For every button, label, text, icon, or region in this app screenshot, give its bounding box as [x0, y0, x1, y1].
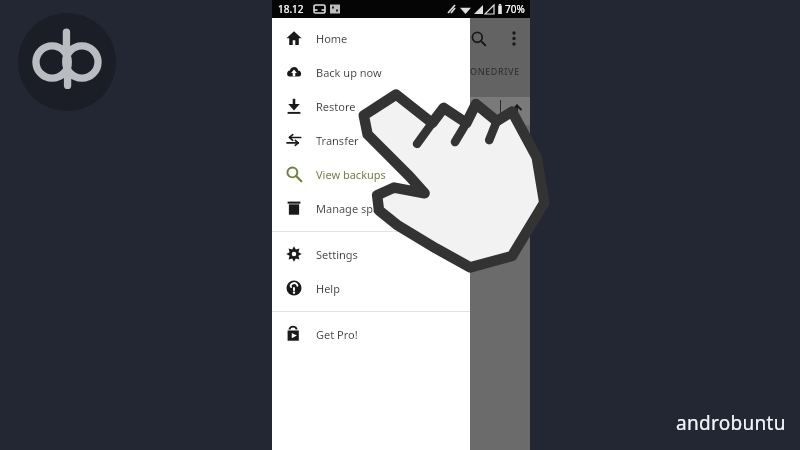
button[interactable]: Settings [272, 237, 470, 271]
staticText: Manage space [316, 201, 391, 216]
staticText: ONEDRIVE [470, 65, 520, 77]
button[interactable]: Manage space [272, 191, 470, 225]
button[interactable]: Home [272, 21, 470, 55]
staticText: 18.12 [278, 2, 304, 16]
staticText: androbuntu [676, 410, 786, 436]
button[interactable]: Up [504, 98, 530, 124]
staticText: Back up now [316, 65, 382, 80]
staticText: 70% [505, 2, 525, 16]
staticText: Home [316, 31, 348, 46]
button[interactable]: Help [272, 271, 470, 305]
other: App logo [18, 13, 116, 111]
button[interactable]: View backups [272, 157, 470, 191]
button[interactable]: Back up now [272, 55, 470, 89]
staticText: Help [316, 281, 340, 296]
button[interactable]: Restore [272, 89, 470, 123]
staticText: View backups [316, 167, 386, 182]
button[interactable]: Transfer [272, 123, 470, 157]
staticText: Restore [316, 99, 356, 114]
staticText: Settings [316, 247, 358, 262]
button[interactable]: Search [462, 22, 494, 54]
staticText: Get Pro! [316, 327, 358, 342]
button[interactable]: Get Pro! [272, 317, 470, 351]
staticText: Transfer [316, 133, 359, 148]
button[interactable]: More options [498, 22, 530, 54]
